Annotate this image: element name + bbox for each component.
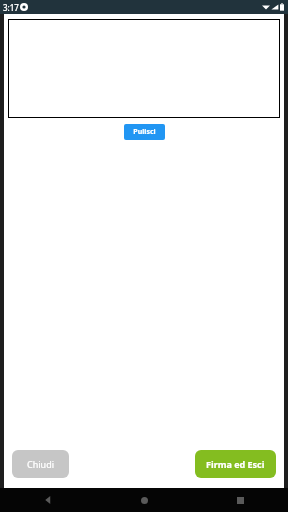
staticText: Firma ed Esci: [206, 458, 265, 470]
button[interactable]: Area firma: [8, 19, 280, 118]
staticText: 3:17: [3, 2, 19, 13]
button[interactable]: Home: [96, 488, 192, 512]
button[interactable]: Pulisci: [124, 124, 165, 140]
staticText: Chiudi: [27, 458, 54, 470]
button[interactable]: Firma ed Esci: [195, 450, 276, 478]
button[interactable]: Recent apps: [192, 488, 288, 512]
button[interactable]: Chiudi: [12, 450, 69, 478]
staticText: Pulisci: [133, 127, 156, 137]
button[interactable]: Back: [0, 488, 96, 512]
